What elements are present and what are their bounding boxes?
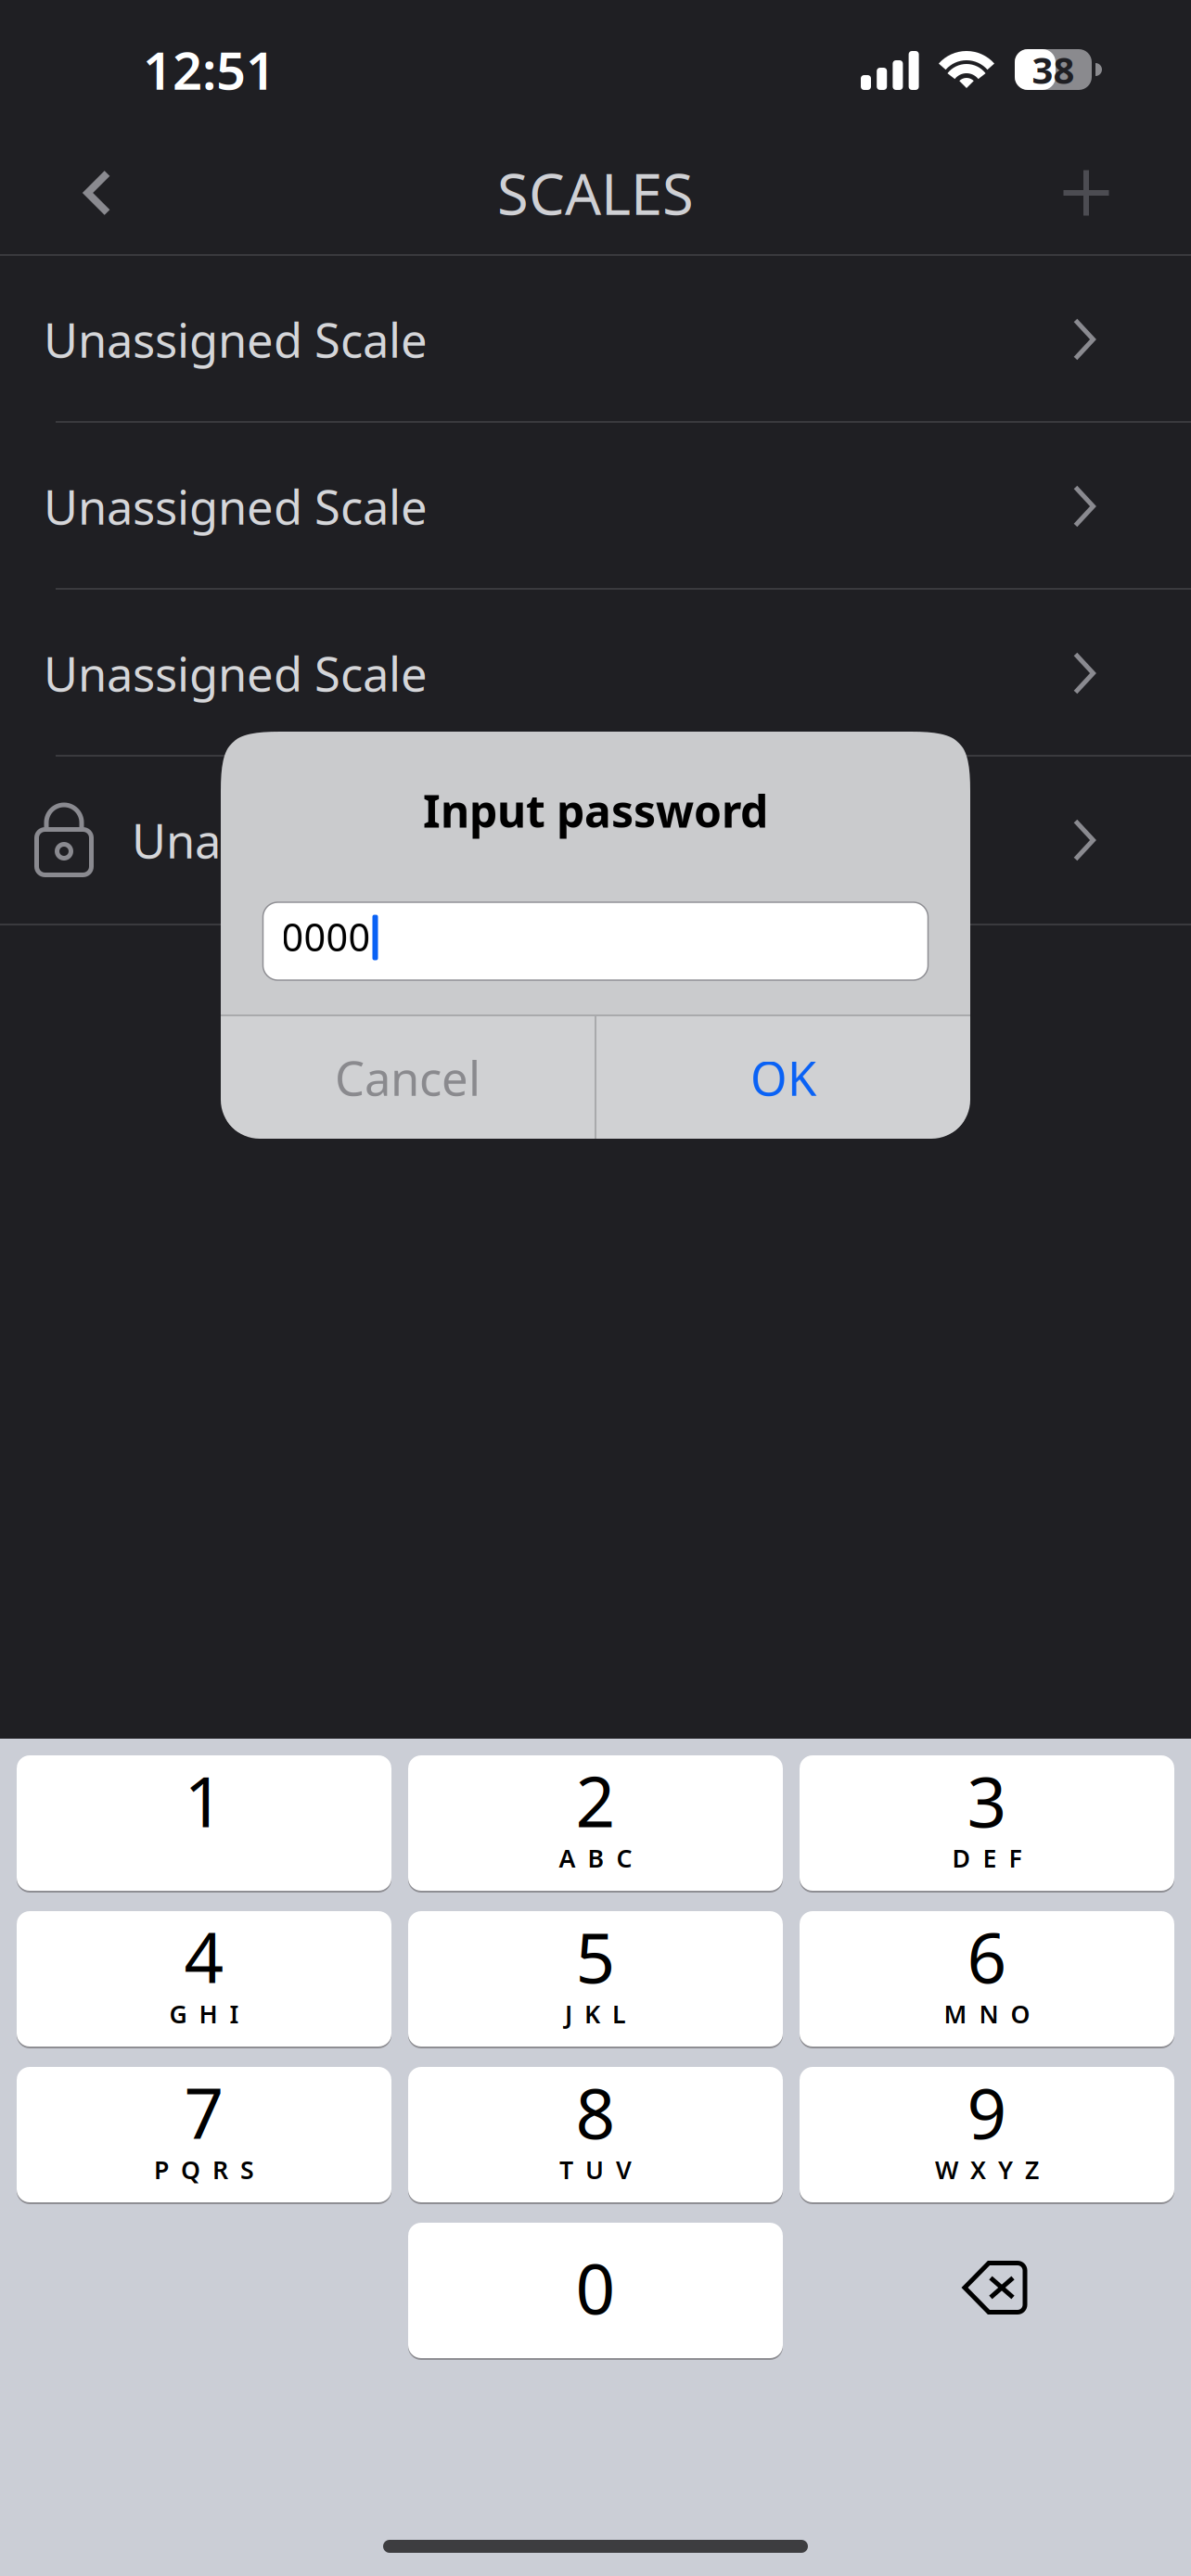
staticText: 12:51 (143, 35, 275, 104)
staticText: 6 (967, 1910, 1007, 2002)
button[interactable]: Back (0, 134, 195, 252)
staticText: 0000 (282, 911, 371, 962)
button[interactable]: Unassigned Scale (0, 757, 1191, 924)
staticText: 7 (184, 2066, 224, 2158)
button[interactable]: Unassigned Scale (0, 590, 1191, 757)
button[interactable]: 7 (17, 2067, 391, 2202)
staticText: Unassigned Scale (132, 809, 516, 871)
staticText: 2 (576, 1754, 615, 1846)
staticText: J K L (565, 1997, 626, 2030)
staticText: G H I (169, 1997, 239, 2030)
staticText: OK (750, 1046, 816, 1109)
staticText: Cancel (335, 1046, 480, 1109)
staticText: 3 (967, 1754, 1007, 1846)
button[interactable]: Unassigned Scale (0, 256, 1191, 423)
button[interactable]: Delete (800, 2223, 1174, 2358)
button[interactable]: 8 (408, 2067, 783, 2202)
button[interactable]: OK (596, 1016, 970, 1139)
staticText: Input password (423, 781, 768, 840)
staticText: 0 (576, 2241, 615, 2333)
staticText: 8 (576, 2066, 615, 2158)
staticText: D E F (952, 1842, 1022, 1874)
button[interactable]: 4 (17, 1911, 391, 2047)
staticText: A B C (559, 1842, 632, 1874)
button[interactable]: Cancel (221, 1016, 595, 1139)
staticText: Unassigned Scale (44, 308, 428, 371)
staticText: W X Y Z (935, 2153, 1039, 2186)
button[interactable]: 0 (408, 2223, 783, 2358)
button[interactable]: 9 (800, 2067, 1174, 2202)
staticText: Unassigned Scale (44, 642, 428, 704)
staticText: 5 (576, 1910, 615, 2002)
button[interactable]: Add scale (981, 134, 1191, 252)
staticText: T U V (559, 2153, 632, 2186)
staticText: 4 (184, 1910, 224, 2002)
button[interactable]: 1 (17, 1755, 391, 1891)
button[interactable]: 6 (800, 1911, 1174, 2047)
button[interactable]: 2 (408, 1755, 783, 1891)
staticText: 38 (1032, 45, 1075, 94)
staticText: M N O (944, 1997, 1030, 2030)
staticText: P Q R S (154, 2153, 254, 2186)
staticText: Unassigned Scale (44, 475, 428, 538)
staticText: 1 (184, 1754, 224, 1846)
button[interactable]: 3 (800, 1755, 1174, 1891)
button[interactable]: Unassigned Scale (0, 423, 1191, 590)
staticText: SCALES (497, 155, 694, 231)
staticText: 9 (967, 2066, 1007, 2158)
button[interactable]: 5 (408, 1911, 783, 2047)
